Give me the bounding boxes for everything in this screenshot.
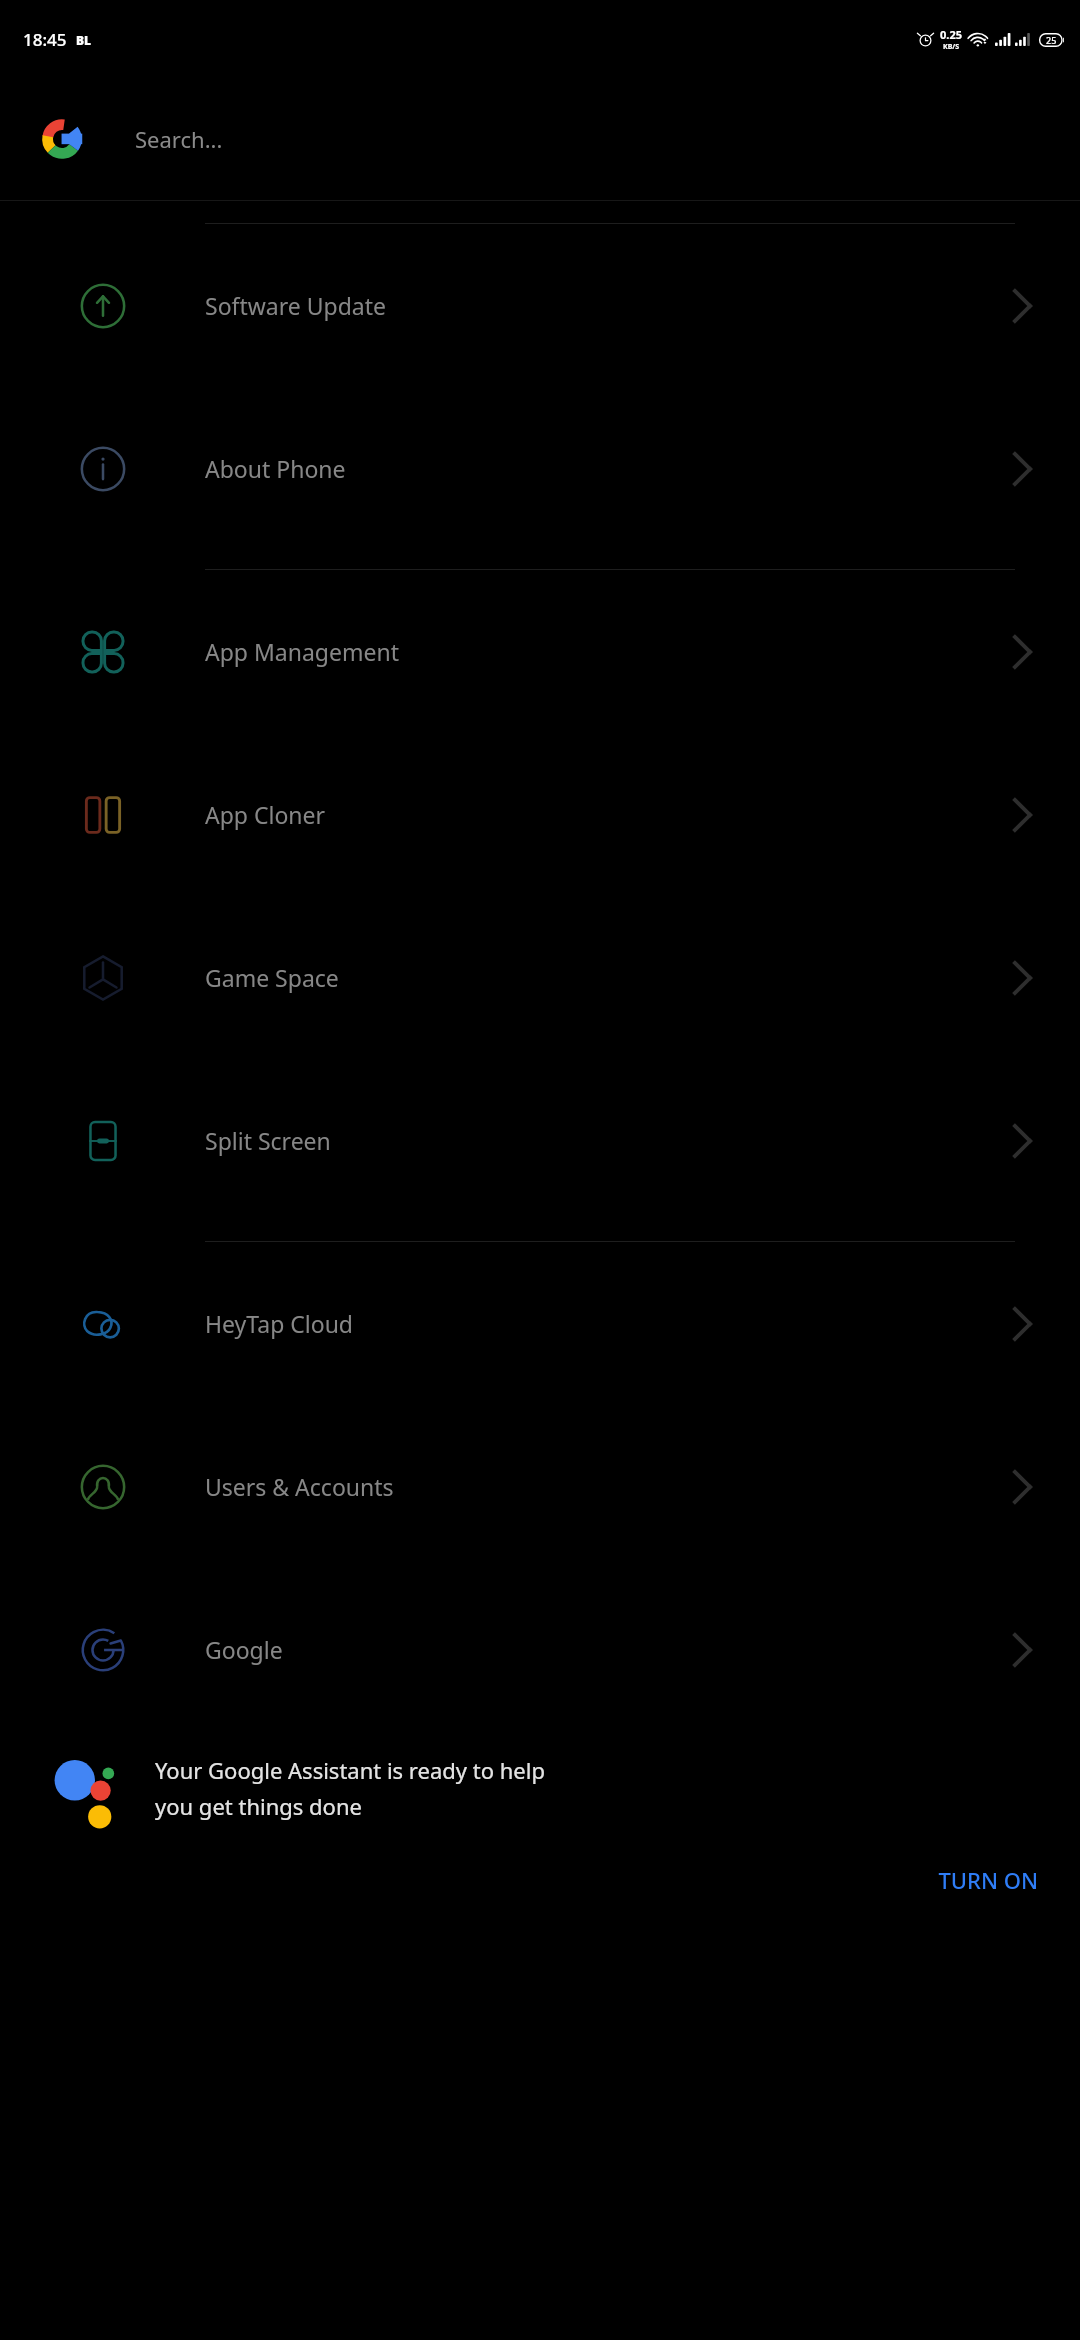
button[interactable]: About Phone: [0, 387, 1080, 550]
button[interactable]: Google: [0, 1568, 1080, 1731]
button[interactable]: TURN ON: [896, 1853, 1080, 1907]
staticText: KB/S: [943, 42, 960, 52]
staticText: BL: [76, 32, 92, 48]
staticText: App Cloner: [205, 799, 965, 830]
staticText: you get things done: [155, 1791, 362, 1821]
button[interactable]: HeyTap Cloud: [0, 1242, 1080, 1405]
staticText: App Management: [205, 636, 965, 667]
staticText: Your Google Assistant is ready to help: [155, 1755, 545, 1785]
staticText: Software Update: [205, 290, 965, 321]
staticText: TURN ON: [938, 1865, 1038, 1895]
staticText: Search...: [135, 124, 223, 154]
button[interactable]: Software Update: [0, 224, 1080, 387]
button[interactable]: Search...: [0, 78, 1080, 200]
staticText: Users & Accounts: [205, 1471, 965, 1502]
button[interactable]: Split Screen: [0, 1059, 1080, 1222]
staticText: Game Space: [205, 962, 965, 993]
staticText: About Phone: [205, 453, 965, 484]
button[interactable]: App Cloner: [0, 733, 1080, 896]
staticText: 0.25: [940, 27, 962, 42]
staticText: 18:45: [23, 28, 67, 51]
staticText: HeyTap Cloud: [205, 1308, 965, 1339]
staticText: Split Screen: [205, 1125, 965, 1156]
button[interactable]: Game Space: [0, 896, 1080, 1059]
staticText: Google: [205, 1634, 965, 1665]
button[interactable]: Users & Accounts: [0, 1405, 1080, 1568]
button[interactable]: App Management: [0, 570, 1080, 733]
staticText: 25: [1046, 34, 1057, 46]
